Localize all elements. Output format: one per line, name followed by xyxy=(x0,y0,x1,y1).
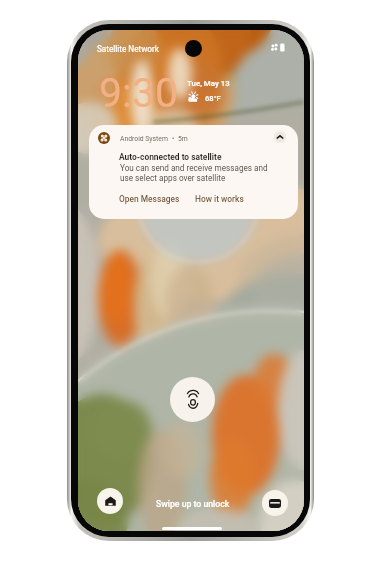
staticText: Swipe up to unlock xyxy=(156,499,230,509)
staticText: 5m xyxy=(178,135,188,143)
staticText: use select apps over satellite xyxy=(120,173,226,183)
button[interactable]: Collapse notification xyxy=(274,131,286,143)
button[interactable]: Home controls xyxy=(97,488,123,514)
staticText: You can send and receive messages and xyxy=(120,163,268,173)
staticText: Tue, May 13 xyxy=(187,79,230,88)
staticText: 9:30 xyxy=(99,69,179,117)
button[interactable]: Android System xyxy=(89,125,298,219)
button[interactable]: How it works xyxy=(195,194,244,204)
button[interactable]: Open Messages xyxy=(119,194,180,204)
staticText: How it works xyxy=(195,194,244,204)
staticText: Satellite Network xyxy=(97,44,159,54)
staticText: Android System xyxy=(120,135,168,143)
staticText: Open Messages xyxy=(119,194,180,204)
button[interactable]: Wallet xyxy=(262,490,288,516)
staticText: • xyxy=(172,135,175,143)
button[interactable]: Unlock with fingerprint xyxy=(170,377,215,422)
staticText: Auto-connected to satellite xyxy=(119,152,222,162)
staticText: 68°F xyxy=(205,94,221,103)
